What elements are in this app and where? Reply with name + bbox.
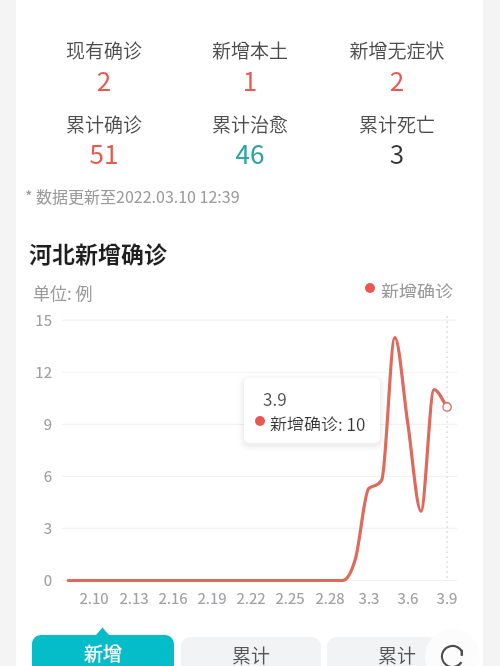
button[interactable]: [327, 106, 467, 168]
button[interactable]: 新增确诊: [365, 278, 453, 298]
button[interactable]: 新增: [32, 627, 174, 666]
staticText: 累计: [378, 641, 417, 666]
staticText: * 数据更新至2022.03.10 12:39: [25, 184, 240, 207]
staticText: 3.6: [378, 587, 438, 609]
button[interactable]: [180, 106, 320, 168]
staticText: 15: [20, 309, 52, 331]
staticText: 2.19: [182, 587, 242, 609]
staticText: 累计治愈: [170, 110, 330, 138]
staticText: 累计死亡: [317, 110, 477, 138]
staticText: 新增确诊: 10: [270, 411, 366, 431]
staticText: 3: [20, 517, 52, 539]
staticText: 3.9: [263, 386, 287, 411]
staticText: 3: [317, 134, 477, 172]
staticText: 累计确诊: [24, 110, 184, 138]
staticText: 1: [170, 61, 330, 99]
staticText: 3.9: [417, 587, 477, 609]
button[interactable]: [180, 32, 320, 94]
staticText: 新增: [84, 639, 123, 666]
staticText: 9: [20, 413, 52, 435]
button[interactable]: 累计: [327, 637, 467, 666]
button[interactable]: Refresh: [425, 629, 480, 666]
staticText: 2: [24, 61, 184, 99]
staticText: 3.3: [339, 587, 399, 609]
staticText: 河北新增确诊: [29, 236, 167, 269]
staticText: 新增本土: [170, 36, 330, 64]
staticText: 12: [20, 361, 52, 383]
staticText: 2.22: [221, 587, 281, 609]
button[interactable]: 累计: [181, 637, 321, 666]
staticText: 2.13: [104, 587, 164, 609]
button[interactable]: [34, 32, 174, 94]
staticText: 0: [20, 569, 52, 591]
staticText: 46: [170, 134, 330, 172]
staticText: 2: [317, 61, 477, 99]
button[interactable]: [34, 106, 174, 168]
staticText: 2.28: [300, 587, 360, 609]
staticText: 2.16: [143, 587, 203, 609]
staticText: 现有确诊: [24, 36, 184, 64]
staticText: 新增无症状: [317, 36, 477, 64]
staticText: 51: [24, 134, 184, 172]
staticText: 单位: 例: [33, 280, 93, 305]
staticText: 累计: [232, 641, 271, 666]
button[interactable]: [327, 32, 467, 94]
staticText: 2.25: [260, 587, 320, 609]
staticText: 新增确诊: [381, 278, 453, 298]
staticText: 6: [20, 465, 52, 487]
staticText: 2.10: [64, 587, 124, 609]
